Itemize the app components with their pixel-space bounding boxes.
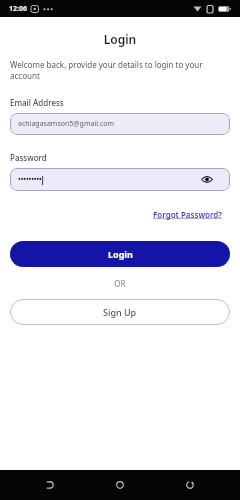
staticText: Login [108, 248, 133, 260]
staticText: 12:06 [9, 4, 27, 14]
staticText: Password [10, 152, 47, 163]
staticText: OR [10, 278, 230, 289]
staticText: ••••••••• [18, 175, 42, 185]
staticText: achiagasamson5@gmail.com [18, 119, 115, 129]
staticText: Login [10, 31, 230, 47]
staticText: Email Address [10, 97, 64, 108]
staticText: Forgot Password? [10, 209, 222, 220]
staticText: Welcome back, provide your details to lo… [10, 59, 230, 81]
staticText: Sign Up [103, 306, 137, 318]
